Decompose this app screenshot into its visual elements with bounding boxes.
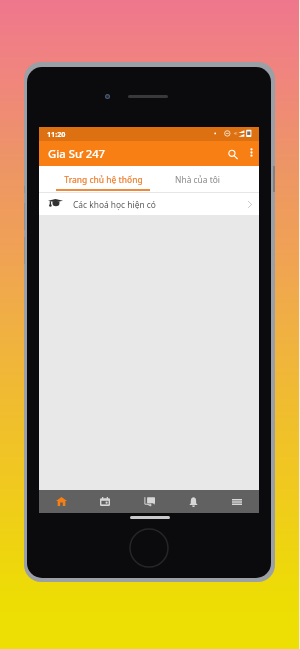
button[interactable]: Home <box>39 490 83 513</box>
button[interactable]: Nhà của tôi <box>150 166 244 193</box>
staticText: Gia Sư 247 <box>48 146 106 161</box>
button[interactable]: Search <box>222 141 244 166</box>
staticText: 11:20 <box>47 129 66 139</box>
button[interactable]: Trang chủ hệ thống <box>56 166 150 193</box>
staticText: Các khoá học hiện có <box>73 199 156 210</box>
button[interactable]: Các khoá học hiện có <box>39 193 259 215</box>
button[interactable]: Notifications <box>171 490 215 513</box>
button[interactable]: Messages <box>127 490 171 513</box>
staticText: Nhà của tôi <box>175 174 220 185</box>
button[interactable]: More options <box>242 141 260 166</box>
staticText: Trang chủ hệ thống <box>64 174 143 185</box>
button[interactable]: Menu <box>215 490 259 513</box>
button[interactable]: Calendar <box>83 490 127 513</box>
